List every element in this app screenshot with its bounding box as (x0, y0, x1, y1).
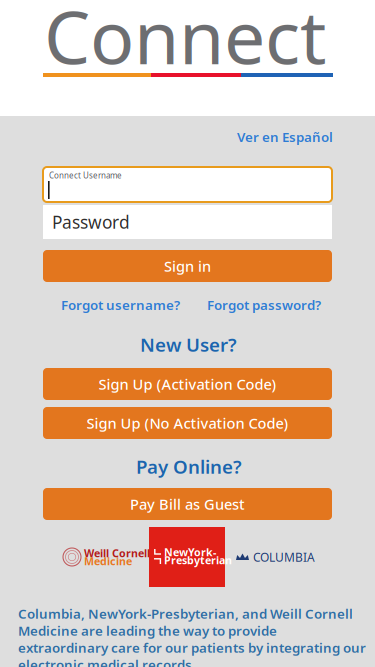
staticText: Sign Up (Activation Code) (98, 374, 276, 394)
staticText: NewYork- (164, 545, 216, 559)
staticText: Sign in (164, 256, 211, 276)
button[interactable]: Ver en Español (237, 128, 333, 146)
staticText: New User? (140, 332, 237, 357)
staticText: Forgot username? (61, 296, 180, 314)
button[interactable]: Pay Bill as Guest (43, 488, 332, 520)
staticText: Pay Bill as Guest (130, 494, 245, 514)
button[interactable]: Sign in (43, 250, 332, 282)
staticText: COLUMBIA (253, 549, 315, 565)
staticText: Connect Username (49, 170, 122, 181)
staticText: Medicine are leading the way to provide (18, 622, 277, 639)
staticText: Presbyterian (164, 553, 232, 567)
staticText: Connect (44, 0, 326, 84)
button[interactable]: Forgot password? (207, 296, 321, 314)
staticText: Weill Cornell (84, 546, 150, 560)
staticText: Columbia, NewYork-Presbyterian, and Weil… (18, 605, 353, 622)
staticText: Medicine (84, 554, 132, 568)
staticText: Ver en Español (237, 128, 333, 146)
staticText: extraordinary care for our patients by i… (18, 639, 366, 656)
button[interactable]: Sign Up (Activation Code) (43, 368, 332, 400)
button[interactable]: Sign Up (No Activation Code) (43, 407, 332, 439)
staticText: Forgot password? (207, 296, 321, 314)
staticText: Sign Up (No Activation Code) (86, 413, 288, 433)
staticText: Pay Online? (136, 454, 242, 479)
button[interactable]: Forgot username? (61, 296, 180, 314)
staticText: electronic medical records. (18, 656, 196, 667)
staticText: Password (52, 210, 130, 233)
